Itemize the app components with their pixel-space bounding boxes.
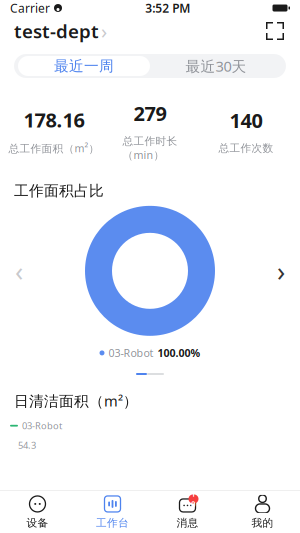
button[interactable]: 工作台 [75,491,150,533]
button[interactable]: 最近30天 [150,56,282,76]
button[interactable]: Next chart [268,254,294,288]
staticText: 178.16 [23,107,84,133]
button[interactable]: 设备 [0,491,75,533]
staticText: 日清洁面积（m²） [14,391,138,410]
staticText: 总工作时长（min） [122,135,177,162]
button[interactable]: test-dept [14,12,107,50]
staticText: 54.3 [18,439,36,451]
staticText: Carrier [10,0,50,16]
button[interactable]: Scan code [264,20,286,42]
button[interactable]: Previous chart [6,254,32,288]
staticText: 最近30天 [185,56,246,76]
staticText: 总工作面积（m²） [8,141,99,155]
staticText: test-dept [14,19,99,43]
staticText: 设备 [26,516,48,529]
staticText: 我的 [251,516,273,529]
staticText: 最近一周 [54,57,114,75]
staticText: 100.00% [157,346,200,360]
staticText: 279 [133,100,166,127]
staticText: 总工作次数 [218,142,273,155]
staticText: 消息 [176,516,198,529]
button[interactable]: 我的 [225,491,300,533]
staticText: › [277,253,285,288]
staticText: 03-Robot [108,346,153,360]
staticText: 工作面积占比 [14,182,104,200]
staticText: 10 [191,488,196,509]
button[interactable]: 10 [150,491,225,533]
staticText: ‹ [15,253,23,288]
button[interactable]: 最近一周 [18,56,150,76]
staticText: 140 [229,107,262,134]
staticText: 03-Robot [22,419,62,432]
staticText: 3:52 PM [145,0,190,16]
staticText: › [101,18,107,44]
staticText: 工作台 [96,516,129,529]
